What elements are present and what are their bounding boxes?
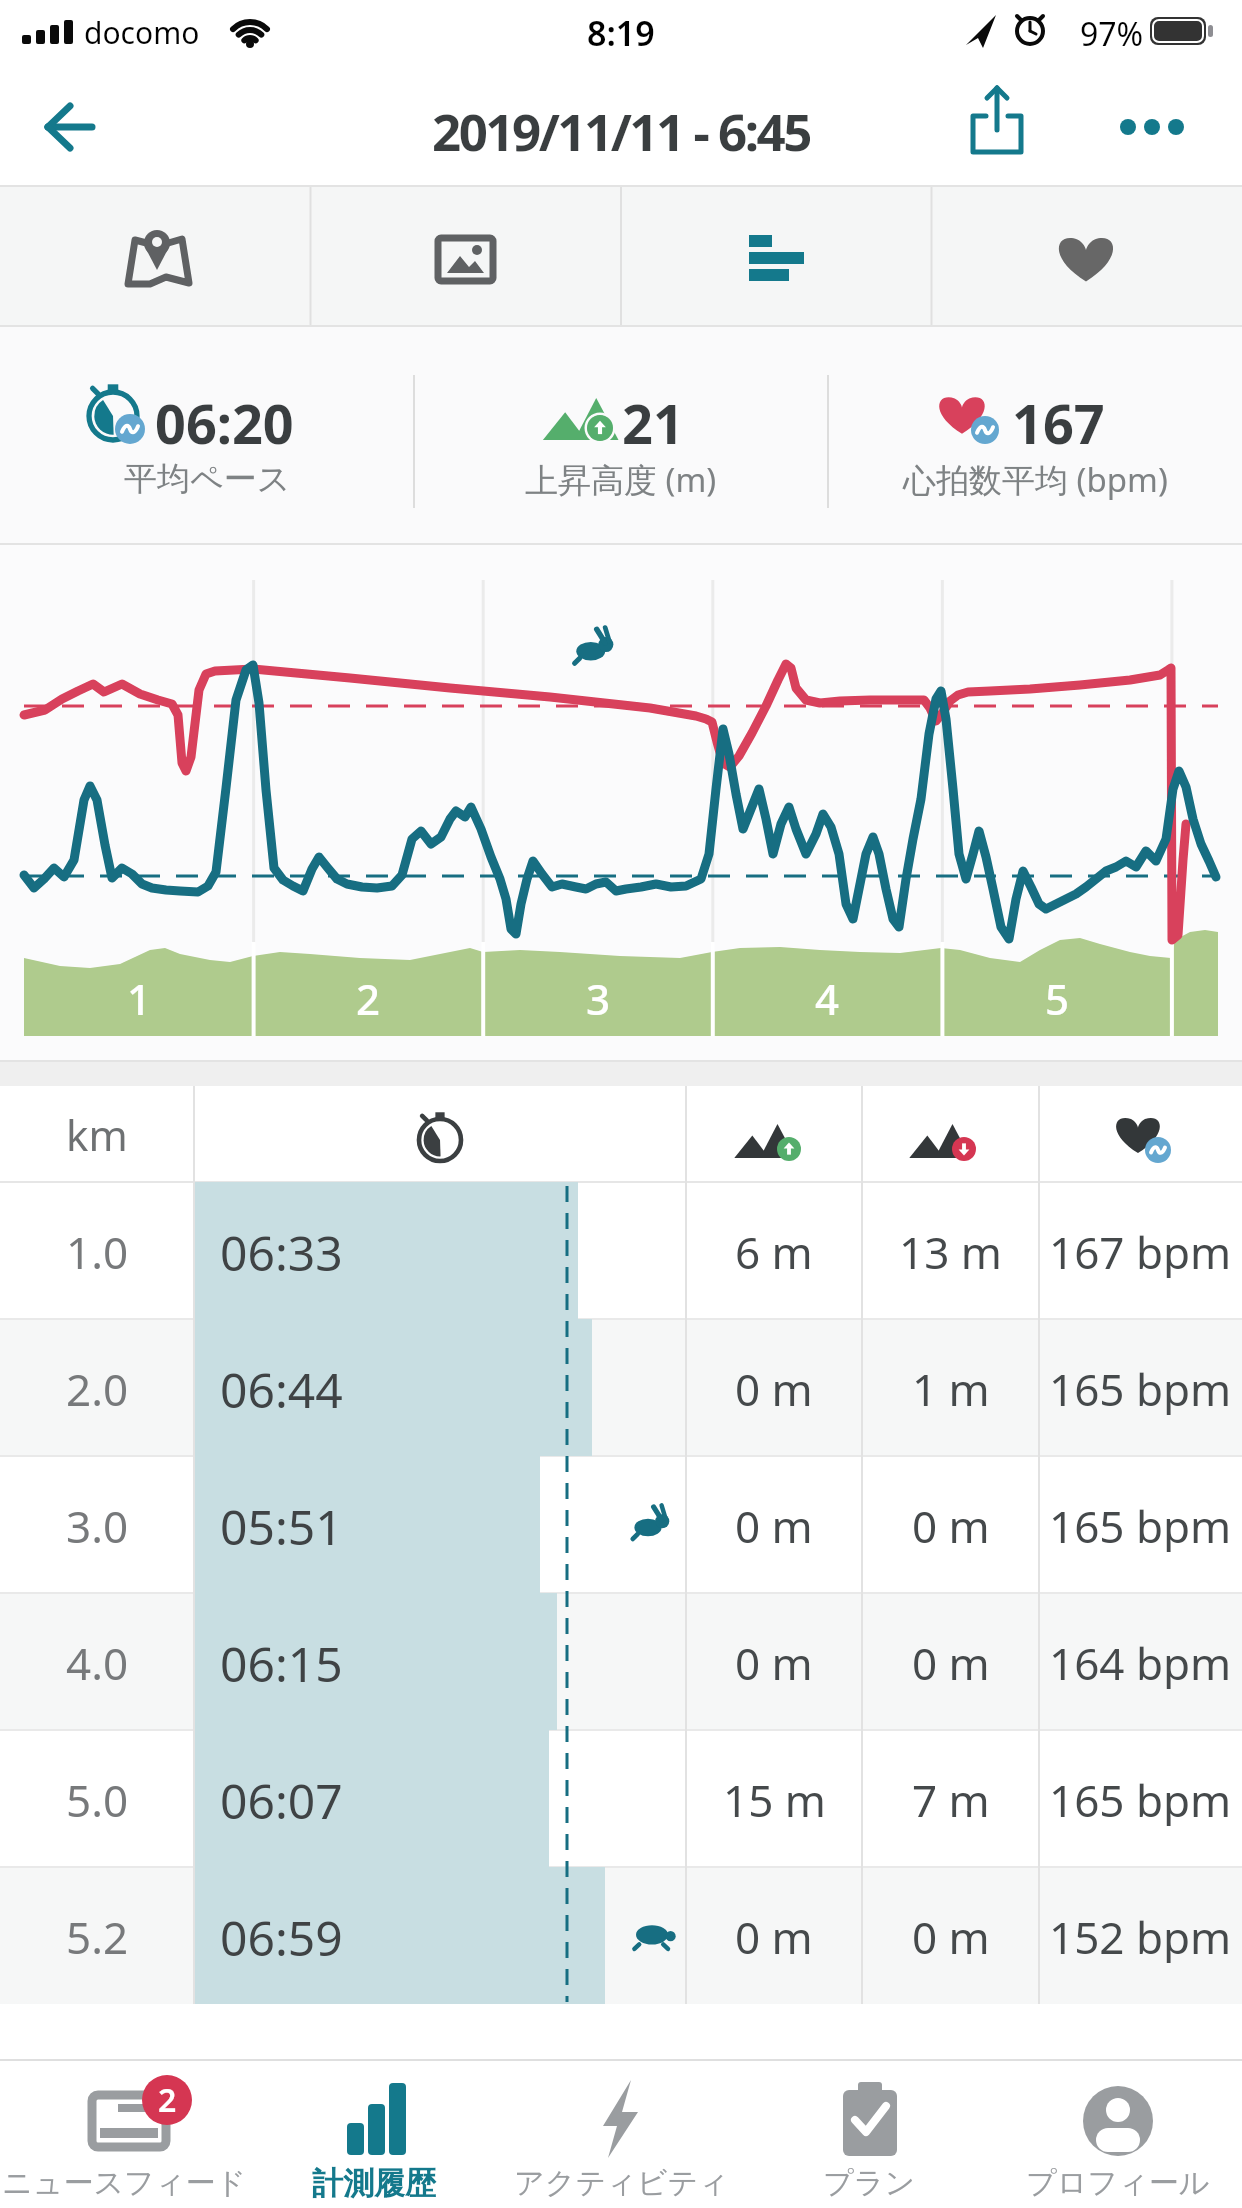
staticText: 0 m [912, 1633, 990, 1689]
staticText: 5 [1045, 970, 1070, 1022]
staticText: 上昇高度 (m) [525, 457, 717, 502]
staticText: プロフィール [1026, 2164, 1210, 2202]
staticText: 1.0 [66, 1222, 129, 1278]
staticText: 平均ペース [124, 458, 291, 500]
staticText: 06:15 [220, 1631, 343, 1691]
staticText: 1 [127, 970, 152, 1022]
staticText: 7 m [912, 1770, 990, 1826]
button[interactable] [745, 2062, 993, 2208]
staticText: 06:33 [220, 1220, 343, 1280]
staticText: 0 m [912, 1907, 990, 1963]
staticText: 3.0 [66, 1496, 129, 1552]
staticText: 167 bpm [1049, 1222, 1232, 1278]
staticText: 4 [815, 970, 840, 1022]
staticText: 2.0 [66, 1359, 129, 1415]
staticText: 2 [158, 2078, 177, 2122]
staticText: 0 m [912, 1496, 990, 1552]
button[interactable] [311, 187, 621, 325]
button[interactable] [0, 187, 310, 325]
staticText: 06:20 [155, 386, 294, 446]
staticText: 06:59 [220, 1905, 343, 1965]
button[interactable] [497, 2062, 745, 2208]
staticText: 2019/11/11 - 6:45 [432, 96, 810, 158]
button[interactable] [30, 92, 110, 162]
button[interactable] [1108, 92, 1198, 162]
staticText: 6 m [735, 1222, 813, 1278]
staticText: プラン [823, 2164, 916, 2202]
button[interactable] [955, 80, 1040, 160]
staticText: 15 m [723, 1770, 826, 1826]
staticText: 0 m [735, 1359, 813, 1415]
staticText: 2 [356, 970, 381, 1022]
staticText: 167 [1012, 386, 1105, 446]
staticText: 05:51 [220, 1494, 343, 1554]
button[interactable] [621, 187, 931, 325]
staticText: アクティビティ [514, 2164, 729, 2202]
staticText: km [66, 1106, 128, 1162]
staticText: 0 m [735, 1907, 813, 1963]
staticText: 165 bpm [1049, 1770, 1232, 1826]
staticText: 1 m [912, 1359, 990, 1415]
staticText: 152 bpm [1049, 1907, 1232, 1963]
staticText: 4.0 [66, 1633, 129, 1689]
staticText: 06:44 [220, 1357, 343, 1417]
staticText: 5.2 [66, 1907, 129, 1963]
staticText: 21 [622, 386, 684, 446]
staticText: 心拍数平均 (bpm) [903, 457, 1168, 502]
staticText: 165 bpm [1049, 1496, 1232, 1552]
staticText: 13 m [899, 1222, 1002, 1278]
staticText: 97% [1080, 12, 1144, 50]
staticText: 165 bpm [1049, 1359, 1232, 1415]
staticText: 164 bpm [1049, 1633, 1232, 1689]
staticText: 06:07 [220, 1768, 343, 1828]
button[interactable] [994, 2062, 1242, 2208]
staticText: docomo [84, 12, 200, 50]
staticText: 0 m [735, 1496, 813, 1552]
staticText: 3 [586, 970, 611, 1022]
staticText: 8:19 [587, 10, 655, 52]
button[interactable] [0, 2062, 248, 2208]
button[interactable] [932, 187, 1242, 325]
button[interactable] [248, 2062, 496, 2208]
staticText: 計測履歴 [312, 2164, 436, 2203]
staticText: ニュースフィード [2, 2164, 247, 2202]
staticText: 5.0 [66, 1770, 129, 1826]
staticText: 0 m [735, 1633, 813, 1689]
